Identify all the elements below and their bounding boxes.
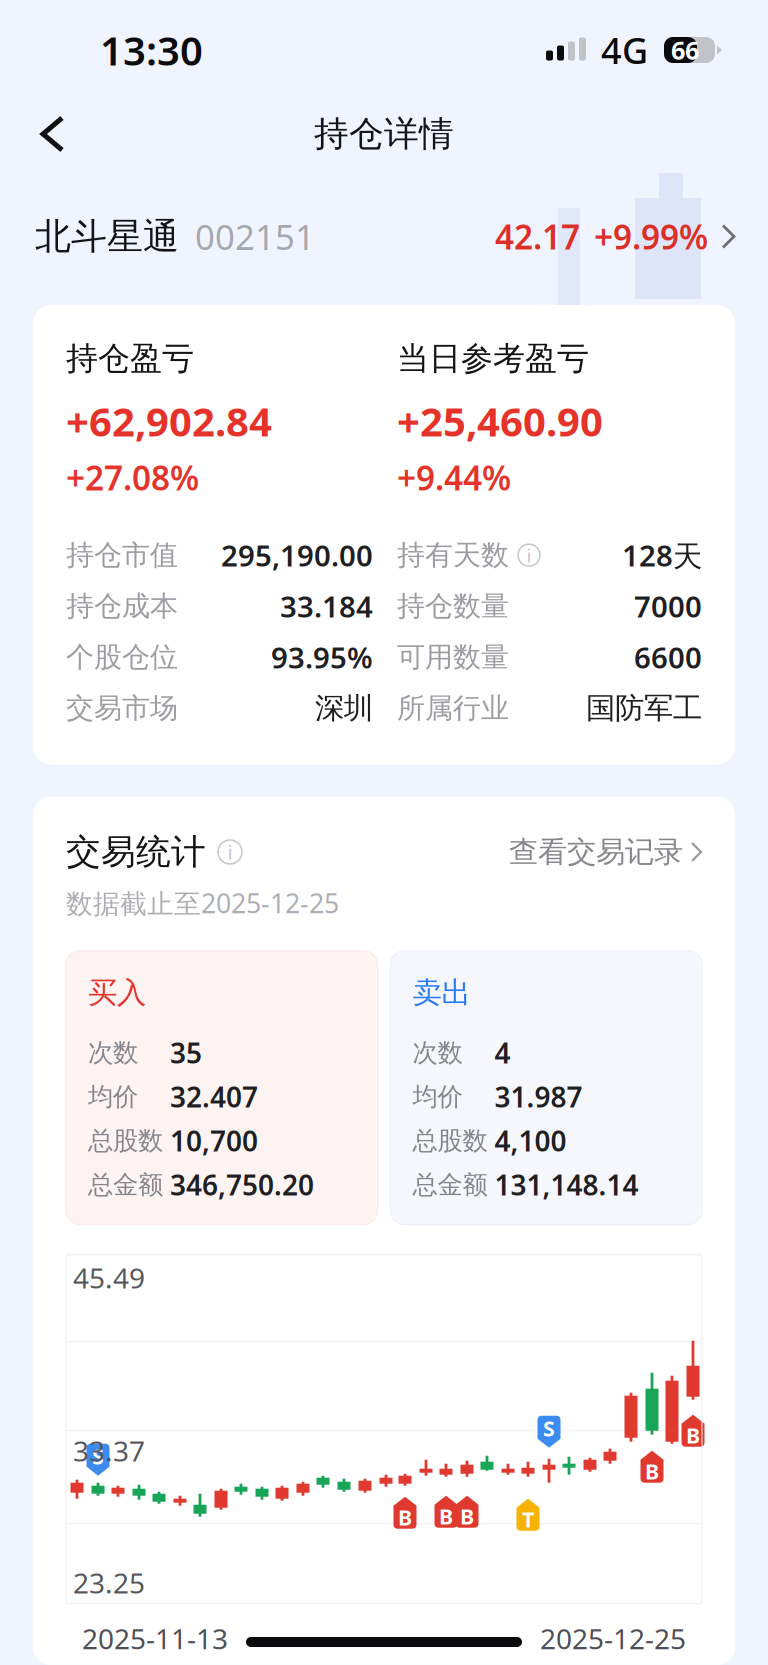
staticText: 7000 — [634, 587, 702, 626]
staticText: 33.184 — [280, 587, 373, 626]
staticText: 33.37 — [73, 1432, 145, 1469]
staticText: T — [522, 1505, 534, 1533]
staticText: 持仓详情 — [314, 113, 454, 155]
staticText: i — [227, 839, 232, 865]
staticText: 346,750.20 — [170, 1166, 314, 1203]
staticText: +25,460.90 — [397, 394, 603, 447]
button[interactable]: 北斗星通 — [0, 168, 768, 305]
staticText: 次数 — [88, 1037, 138, 1068]
staticText: 4 — [494, 1034, 510, 1071]
staticText: 国防军工 — [586, 690, 702, 726]
staticText: 35 — [170, 1034, 202, 1071]
button[interactable]: 查看交易记录 — [509, 834, 702, 870]
staticText: B — [686, 1421, 700, 1449]
staticText: 总金额 — [412, 1169, 487, 1200]
staticText: 深圳 — [315, 690, 373, 726]
staticText: 32.407 — [170, 1078, 258, 1115]
staticText: 当日参考盈亏 — [397, 339, 589, 378]
staticText: 295,190.00 — [221, 536, 373, 575]
staticText: 可用数量 — [397, 640, 509, 674]
staticText: 66 — [671, 33, 699, 67]
staticText: B — [460, 1502, 474, 1530]
staticText: +9.44% — [397, 455, 511, 500]
staticText: 总股数 — [88, 1125, 163, 1156]
staticText: i — [526, 543, 531, 568]
staticText: 个股仓位 — [66, 640, 178, 674]
staticText: +9.99% — [594, 214, 708, 259]
staticText: 交易统计 — [66, 831, 206, 873]
staticText: B — [398, 1503, 412, 1531]
staticText: +27.08% — [66, 455, 199, 500]
staticText: 42.17 — [495, 214, 580, 259]
staticText: 131,148.14 — [494, 1166, 638, 1203]
staticText: 2025-12-25 — [540, 1620, 686, 1657]
staticText: B — [645, 1457, 659, 1485]
staticText: 买入 — [88, 975, 146, 1011]
button[interactable]: 返回 — [20, 103, 85, 165]
staticText: 查看交易记录 — [509, 834, 683, 870]
staticText: 10,700 — [170, 1122, 258, 1159]
staticText: 北斗星通 — [35, 214, 179, 259]
staticText: 总金额 — [88, 1169, 163, 1200]
staticText: 31.987 — [494, 1078, 582, 1115]
staticText: 持仓成本 — [66, 589, 178, 623]
staticText: 持有天数 — [397, 538, 509, 572]
staticText: S — [92, 1442, 104, 1470]
staticText: 所属行业 — [397, 691, 509, 725]
staticText: 93.95% — [271, 638, 373, 677]
staticText: 总股数 — [412, 1125, 487, 1156]
staticText: 均价 — [88, 1081, 138, 1112]
staticText: 均价 — [412, 1081, 462, 1112]
staticText: S — [543, 1414, 555, 1442]
staticText: 23.25 — [73, 1564, 145, 1601]
staticText: B — [439, 1502, 453, 1530]
staticText: 4G — [601, 26, 648, 74]
staticText: 002151 — [195, 213, 315, 259]
staticText: 13:30 — [100, 23, 203, 76]
staticText: 6600 — [634, 638, 702, 677]
staticText: 持仓数量 — [397, 589, 509, 623]
staticText: 持仓市值 — [66, 538, 178, 572]
staticText: +62,902.84 — [66, 394, 272, 447]
staticText: 4,100 — [494, 1122, 566, 1159]
staticText: 数据截止至2025-12-25 — [66, 885, 339, 921]
staticText: 次数 — [412, 1037, 462, 1068]
staticText: 2025-11-13 — [82, 1620, 228, 1657]
staticText: 持仓盈亏 — [66, 339, 194, 378]
staticText: 交易市场 — [66, 691, 178, 725]
staticText: 卖出 — [412, 975, 470, 1011]
staticText: 128天 — [622, 536, 702, 575]
staticText: 45.49 — [73, 1259, 145, 1296]
